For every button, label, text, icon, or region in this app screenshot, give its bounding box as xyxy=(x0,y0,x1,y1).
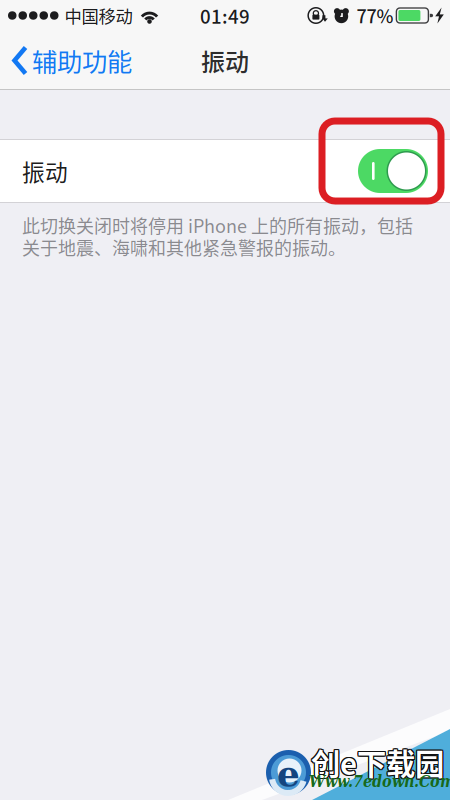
staticText: 振动 xyxy=(22,155,68,187)
button[interactable]: 振动开关 xyxy=(358,149,428,193)
staticText: 01:49 xyxy=(200,2,250,29)
staticText: 创e下载园 xyxy=(312,742,445,784)
staticText: 振动 xyxy=(201,43,249,78)
staticText: 此切换关闭时将停用 iPhone 上的所有振动，包括关于地震、海啸和其他紧急警报… xyxy=(22,212,413,260)
staticText: 创e下载园 xyxy=(310,742,443,784)
staticText: 创e下载园 xyxy=(311,742,444,784)
staticText: Www.7edown.Com xyxy=(309,772,450,791)
staticText: 中国移动 xyxy=(64,3,132,28)
staticText: 77% xyxy=(356,2,393,29)
staticText: 创e下载园 xyxy=(311,740,444,782)
button[interactable]: 辅助功能 xyxy=(0,34,140,87)
staticText: 辅助功能 xyxy=(32,42,132,79)
staticText: 创e下载园 xyxy=(312,741,445,783)
staticText: 创e下载园 xyxy=(311,741,444,783)
staticText: 创e下载园 xyxy=(312,740,445,782)
staticText: 创e下载园 xyxy=(310,741,443,783)
staticText: 创e下载园 xyxy=(310,740,443,782)
staticText: 创e下载园 xyxy=(311,741,444,783)
staticText: e xyxy=(277,752,300,795)
